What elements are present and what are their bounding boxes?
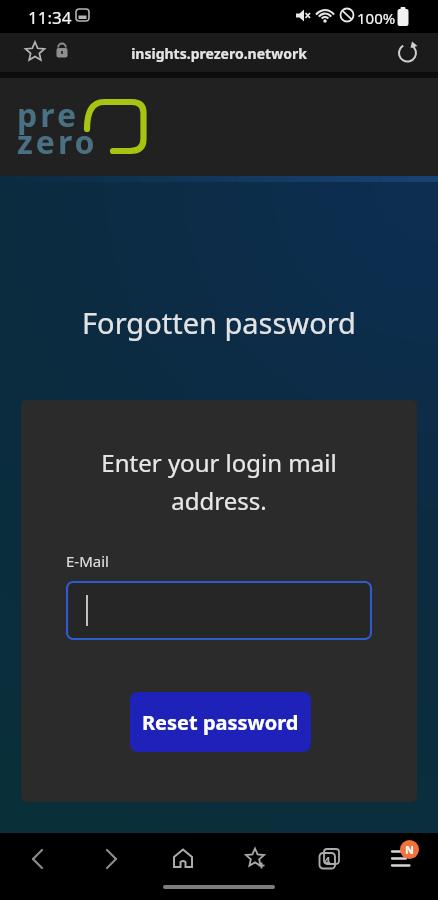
staticText: 100% xyxy=(357,8,396,28)
staticText: Forgotten password xyxy=(0,303,438,342)
staticText: E-Mail xyxy=(66,551,109,571)
staticText: N xyxy=(405,842,414,857)
staticText: Enter your login mail xyxy=(21,446,417,479)
button[interactable] xyxy=(396,41,420,65)
button[interactable] xyxy=(244,847,268,871)
staticText: zero xyxy=(17,120,98,164)
staticText: Reset password xyxy=(142,709,299,736)
button[interactable] xyxy=(171,847,195,871)
button[interactable]: Reset password xyxy=(130,692,311,752)
button[interactable] xyxy=(388,845,418,875)
button[interactable] xyxy=(26,847,50,871)
button[interactable] xyxy=(317,847,341,871)
button[interactable] xyxy=(66,581,372,640)
staticText: 4 xyxy=(324,853,331,868)
button[interactable] xyxy=(24,41,48,65)
staticText: insights.prezero.network xyxy=(0,44,438,63)
staticText: pre xyxy=(17,93,79,137)
button[interactable] xyxy=(99,847,123,871)
staticText: address. xyxy=(21,484,417,517)
staticText: 11:34 xyxy=(28,6,72,29)
